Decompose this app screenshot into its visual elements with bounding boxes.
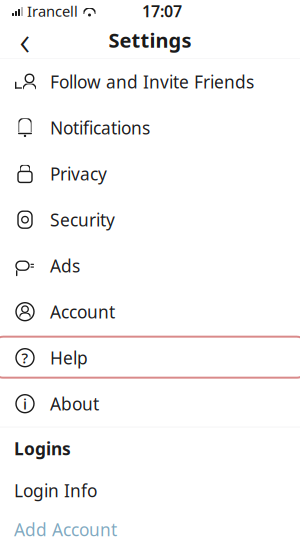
button[interactable]: Security: [0, 197, 300, 243]
button[interactable]: Login Info: [0, 469, 300, 511]
staticText: Security: [50, 208, 115, 231]
staticText: About: [50, 392, 99, 415]
staticText: ‹: [19, 13, 30, 66]
button[interactable]: Privacy: [0, 151, 300, 197]
staticText: Irancell: [27, 1, 78, 21]
staticText: Help: [50, 346, 88, 369]
staticText: ?: [21, 348, 28, 367]
staticText: Settings: [108, 27, 191, 53]
staticText: Ads: [50, 254, 80, 277]
button[interactable]: Ads: [0, 243, 300, 289]
button[interactable]: Account: [0, 289, 300, 335]
staticText: Account: [50, 300, 115, 323]
button[interactable]: Back: [8, 23, 42, 57]
button[interactable]: ?: [0, 335, 300, 381]
button[interactable]: Add Account: [0, 511, 300, 547]
staticText: Login Info: [14, 479, 97, 502]
button[interactable]: i: [0, 381, 300, 427]
staticText: Logins: [14, 437, 71, 460]
button[interactable]: Follow and Invite Friends: [0, 59, 300, 105]
staticText: 17:07: [142, 0, 182, 22]
staticText: Follow and Invite Friends: [50, 70, 254, 93]
staticText: Add Account: [14, 518, 117, 541]
staticText: i: [23, 394, 27, 413]
staticText: Notifications: [50, 116, 150, 139]
button[interactable]: Notifications: [0, 105, 300, 151]
staticText: Privacy: [50, 162, 107, 185]
